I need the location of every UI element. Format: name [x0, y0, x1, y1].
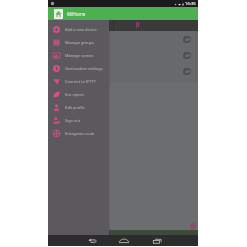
button[interactable]: off — [48, 47, 198, 63]
staticText: Add a new device — [65, 27, 97, 32]
staticText: Eco report — [65, 92, 84, 97]
button[interactable]: Manage groups — [48, 36, 109, 49]
staticText: 16:35 — [185, 1, 196, 7]
button[interactable]: Geolocation settings — [48, 62, 109, 75]
button[interactable]: Edit profile — [48, 101, 109, 114]
staticText: Manage scenes — [65, 53, 94, 58]
staticText: Edit profile — [65, 105, 85, 110]
button[interactable]: Recents — [151, 235, 163, 246]
button[interactable]: Sign out — [48, 114, 109, 127]
button[interactable]: Add a new device — [48, 23, 109, 36]
button[interactable]: off — [48, 63, 198, 79]
button[interactable]: MiHome — [54, 9, 63, 19]
staticText: Sign out — [65, 118, 81, 123]
staticText: off — [185, 53, 190, 58]
staticText: off — [185, 69, 190, 74]
staticText: Energenie.co.uk — [65, 131, 95, 136]
staticText: Geolocation settings — [65, 66, 103, 71]
staticText: Connect to IFTTT — [65, 79, 96, 84]
staticText: Manage groups — [65, 40, 94, 45]
staticText: MiHome — [67, 11, 86, 17]
button[interactable]: Back — [86, 235, 98, 246]
button[interactable]: off — [48, 31, 198, 47]
button[interactable]: Manage scenes — [48, 49, 109, 62]
staticText: off — [185, 37, 190, 42]
button[interactable]: Home — [118, 235, 130, 246]
button[interactable]: Add — [190, 223, 196, 229]
button[interactable]: Energenie.co.uk — [48, 127, 109, 140]
button[interactable]: Eco report — [48, 88, 109, 101]
button[interactable]: Connect to IFTTT — [48, 75, 109, 88]
